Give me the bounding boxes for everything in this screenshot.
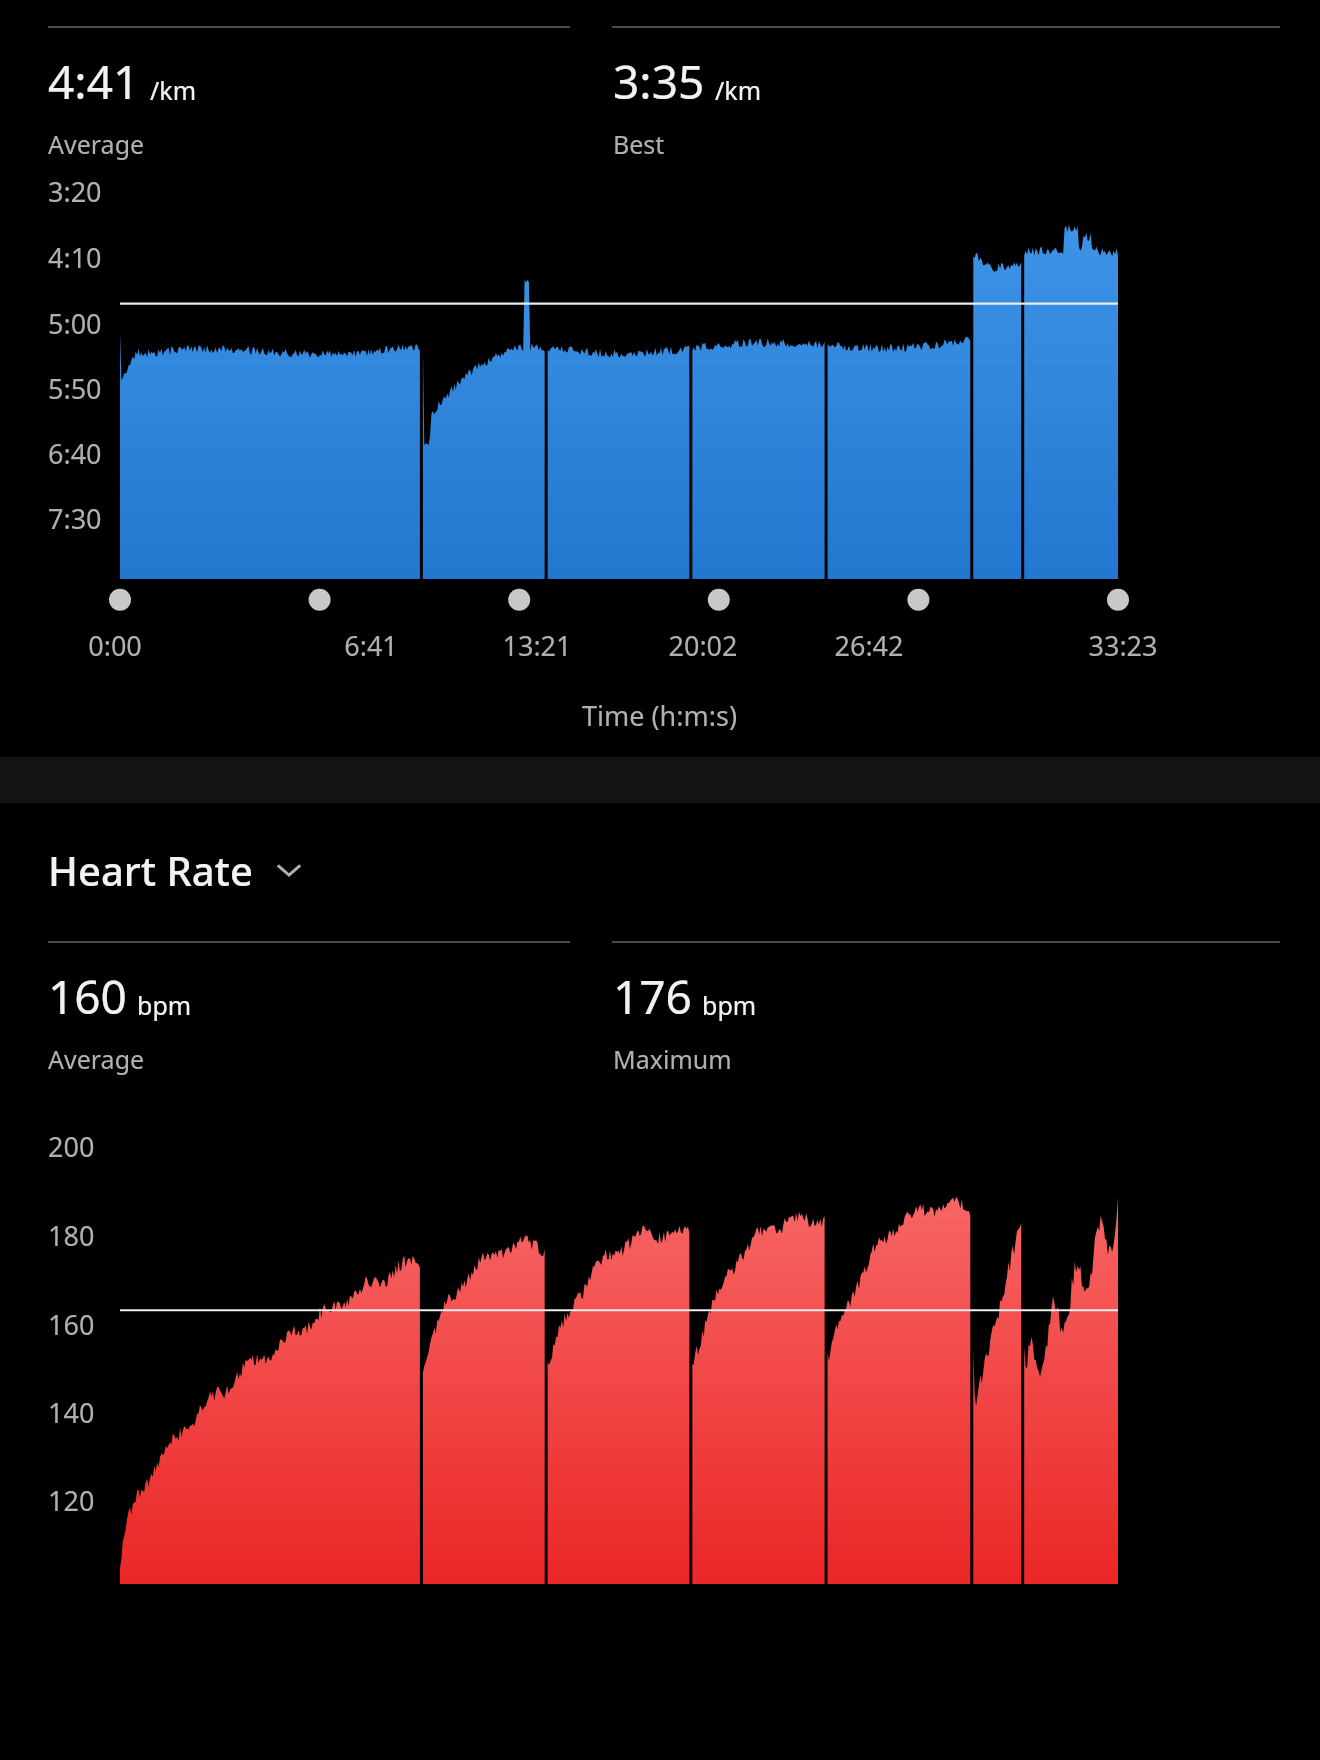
staticText: 6:41 bbox=[344, 627, 398, 664]
staticText: 6:40 bbox=[48, 435, 102, 472]
staticText: Heart Rate bbox=[48, 843, 253, 897]
staticText: 4:10 bbox=[48, 239, 102, 276]
staticText: 200 bbox=[48, 1128, 95, 1165]
staticText: Average bbox=[48, 1042, 145, 1076]
staticText: Time (h:m:s) bbox=[582, 697, 738, 734]
staticText: 13:21 bbox=[502, 627, 572, 664]
staticText: 26:42 bbox=[834, 627, 904, 664]
other: Expand Heart Rate bbox=[271, 852, 307, 888]
staticText: 160 bbox=[48, 1306, 95, 1343]
staticText: 20:02 bbox=[668, 627, 738, 664]
staticText: Best bbox=[613, 127, 665, 161]
staticText: 5:00 bbox=[48, 305, 102, 342]
staticText: bpm bbox=[137, 988, 192, 1022]
staticText: 33:23 bbox=[1088, 627, 1158, 664]
button[interactable]: Heart Rate bbox=[48, 843, 307, 897]
staticText: /km bbox=[715, 73, 762, 107]
staticText: 140 bbox=[48, 1394, 95, 1431]
staticText: 3:20 bbox=[48, 173, 102, 210]
staticText: /km bbox=[150, 73, 197, 107]
staticText: 4:41 bbox=[48, 50, 140, 113]
staticText: 180 bbox=[48, 1217, 95, 1254]
staticText: Average bbox=[48, 127, 145, 161]
staticText: Maximum bbox=[613, 1042, 732, 1076]
staticText: 3:35 bbox=[613, 50, 705, 113]
staticText: 7:30 bbox=[48, 500, 102, 537]
staticText: bpm bbox=[702, 988, 757, 1022]
staticText: 160 bbox=[48, 965, 127, 1028]
staticText: 5:50 bbox=[48, 370, 102, 407]
staticText: 176 bbox=[613, 965, 692, 1028]
staticText: 0:00 bbox=[88, 627, 142, 664]
staticText: 120 bbox=[48, 1482, 95, 1519]
